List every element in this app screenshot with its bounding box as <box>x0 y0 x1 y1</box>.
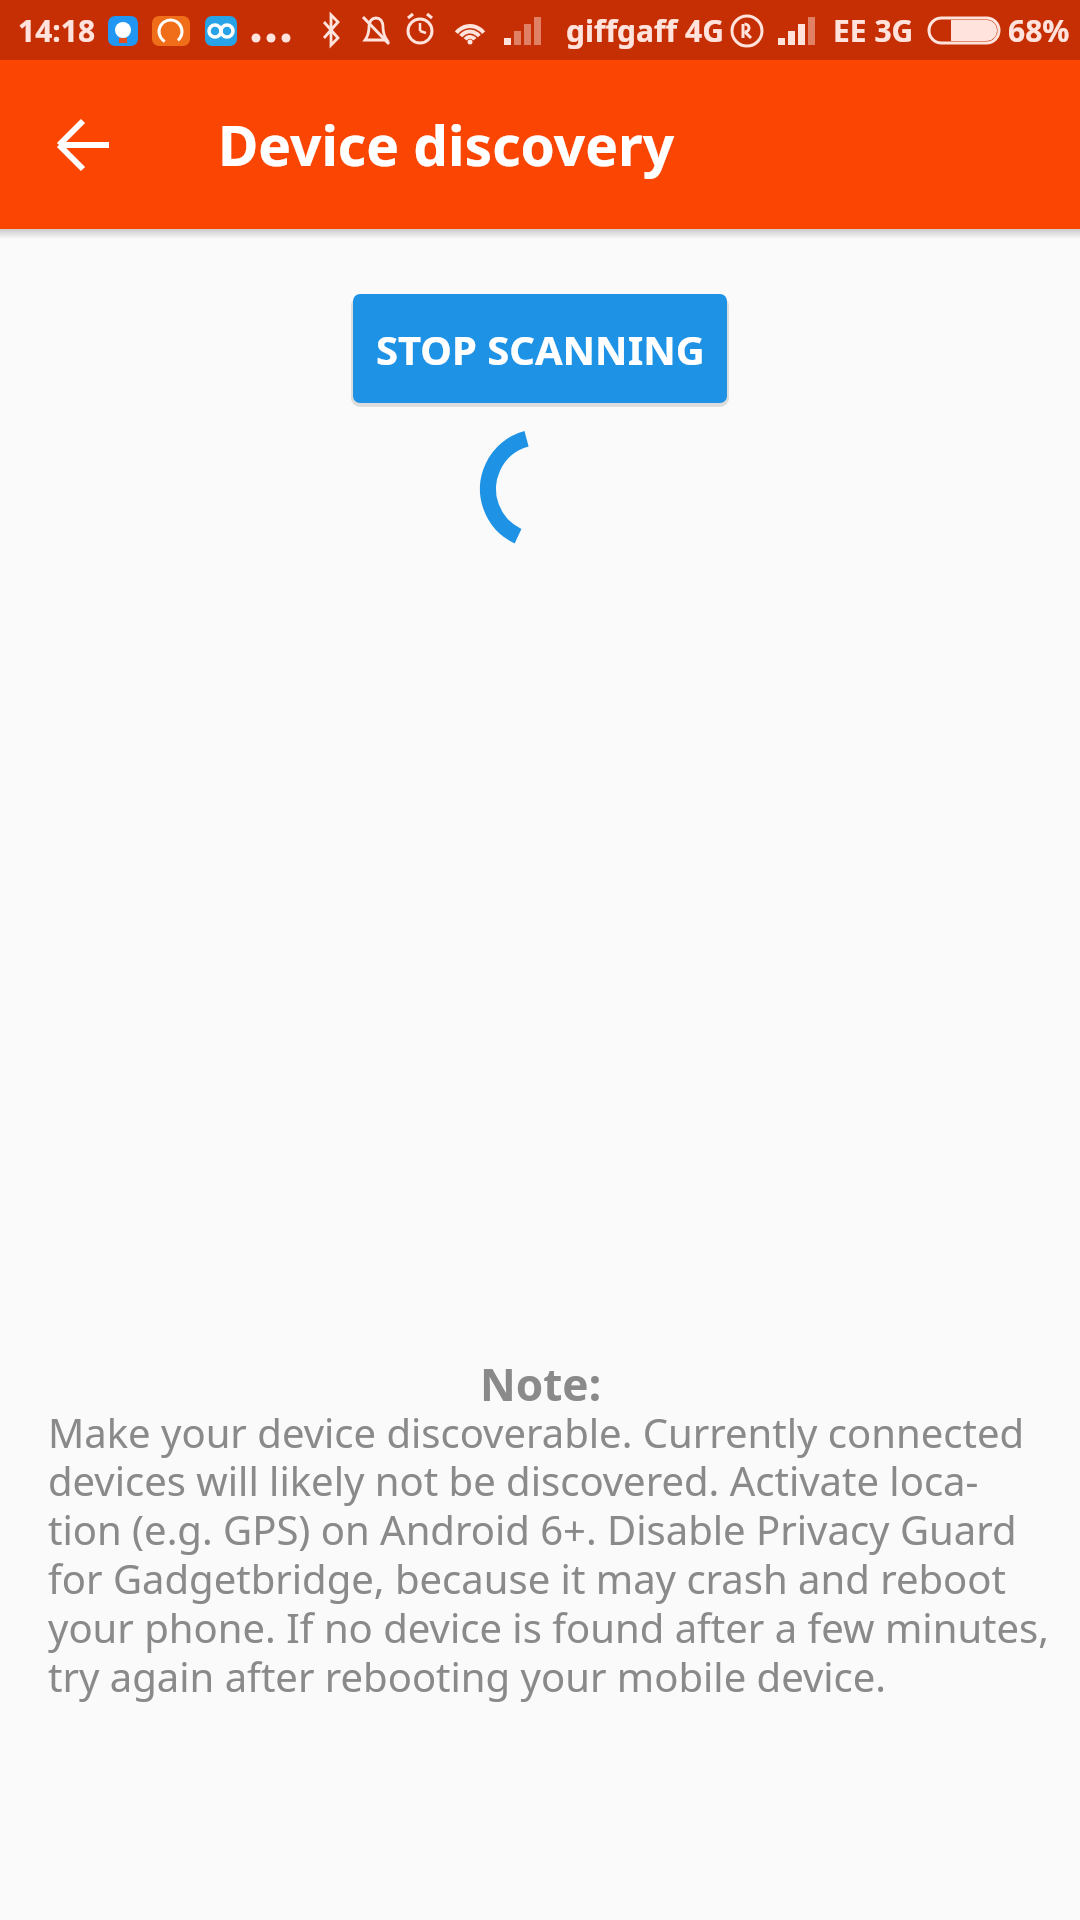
staticText: Note: <box>480 1354 601 1414</box>
button[interactable]: STOP SCANNING <box>353 294 727 403</box>
staticText: 14:18 <box>18 10 96 51</box>
staticText: STOP SCANNING <box>376 322 705 376</box>
staticText: Make your device discoverable. Currently… <box>48 1405 1049 1704</box>
staticText: 68% <box>1008 10 1070 51</box>
staticText: giffgaff 4G <box>566 10 724 51</box>
button[interactable] <box>57 118 111 172</box>
staticText: Device discovery <box>218 107 675 182</box>
staticText: EE 3G <box>833 10 914 51</box>
